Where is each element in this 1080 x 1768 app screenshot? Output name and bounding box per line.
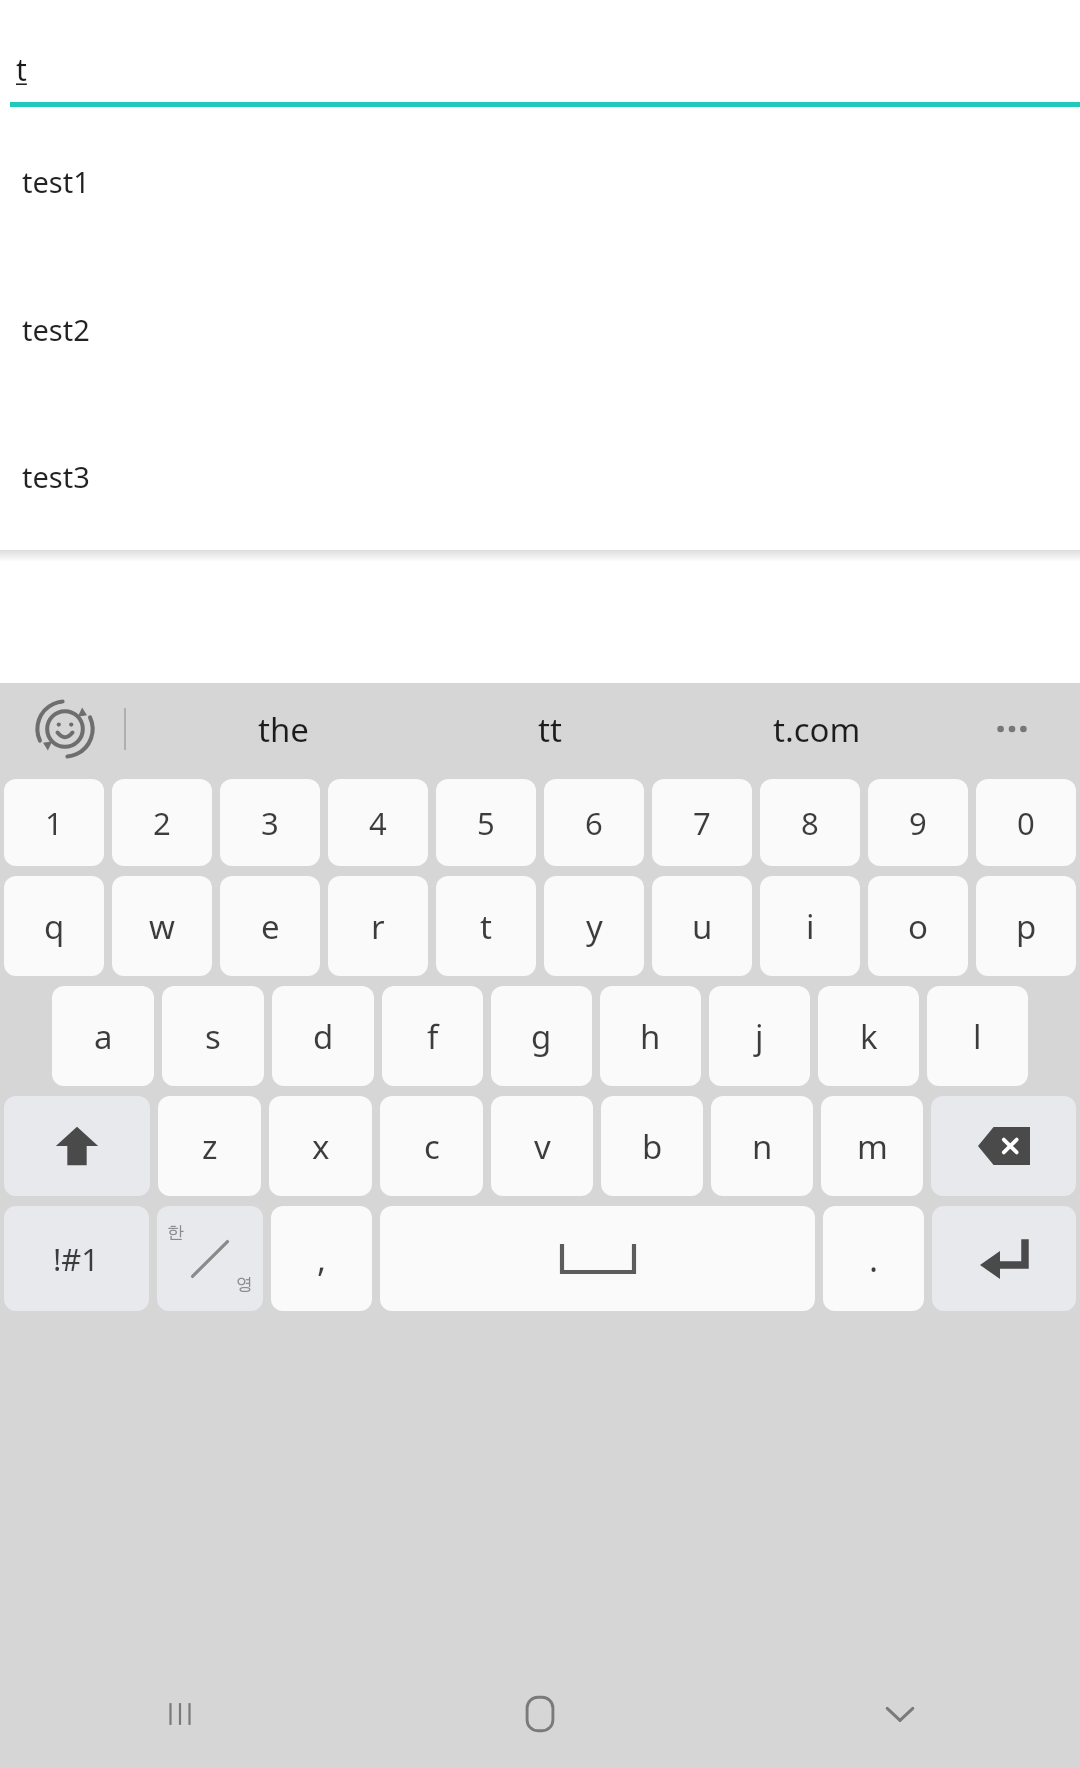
staticText: f — [427, 1014, 439, 1059]
button[interactable]: 4 — [328, 779, 428, 866]
staticText: e — [261, 904, 280, 949]
button[interactable]: . — [823, 1206, 924, 1311]
button[interactable]: 9 — [868, 779, 968, 866]
button[interactable]: test2 — [0, 255, 1080, 403]
staticText: c — [424, 1124, 440, 1169]
staticText: b — [642, 1124, 663, 1169]
staticText: the — [258, 707, 309, 752]
staticText: 1 — [45, 802, 63, 844]
button[interactable]: p — [976, 876, 1076, 976]
button[interactable]: Language — [157, 1206, 263, 1311]
staticText: m — [857, 1124, 888, 1169]
staticText: 3 — [261, 802, 279, 844]
button[interactable]: s — [162, 986, 264, 1086]
button[interactable]: j — [709, 986, 810, 1086]
staticText: t.com — [773, 707, 861, 752]
button[interactable]: t — [436, 876, 536, 976]
button[interactable]: Home — [360, 1660, 720, 1768]
button[interactable]: 7 — [652, 779, 752, 866]
button[interactable]: Emoji — [38, 702, 92, 756]
button[interactable]: Backspace — [931, 1096, 1076, 1196]
button[interactable]: More options — [982, 699, 1042, 759]
staticText: i — [806, 904, 815, 949]
button[interactable]: Space — [380, 1206, 815, 1311]
button[interactable]: 1 — [4, 779, 104, 866]
staticText: !#1 — [53, 1238, 100, 1280]
staticText: 0 — [1017, 802, 1035, 844]
button[interactable]: i — [760, 876, 860, 976]
button[interactable]: 2 — [112, 779, 212, 866]
button[interactable]: the — [150, 683, 416, 775]
staticText: n — [752, 1124, 773, 1169]
staticText: 6 — [585, 802, 603, 844]
staticText: tt — [538, 707, 562, 752]
button[interactable]: d — [272, 986, 374, 1086]
button[interactable]: 3 — [220, 779, 320, 866]
button[interactable]: b — [601, 1096, 703, 1196]
staticText: y — [586, 904, 603, 949]
button[interactable]: test1 — [0, 107, 1080, 255]
staticText: v — [534, 1124, 551, 1169]
staticText: p — [1016, 904, 1037, 949]
button[interactable]: Enter — [932, 1206, 1076, 1311]
button[interactable]: o — [868, 876, 968, 976]
button[interactable]: 5 — [436, 779, 536, 866]
button[interactable]: , — [271, 1206, 372, 1311]
staticText: o — [908, 904, 928, 949]
button[interactable]: e — [220, 876, 320, 976]
staticText: 9 — [909, 802, 927, 844]
button[interactable]: test3 — [0, 403, 1080, 550]
button[interactable]: x — [269, 1096, 372, 1196]
staticText: u — [692, 904, 713, 949]
button[interactable]: g — [491, 986, 592, 1086]
staticText: . — [869, 1236, 879, 1282]
staticText: t — [480, 904, 492, 949]
button[interactable]: q — [4, 876, 104, 976]
staticText: j — [755, 1014, 764, 1059]
button[interactable]: k — [818, 986, 919, 1086]
staticText: test1 — [22, 162, 90, 201]
button[interactable]: t.com — [683, 683, 950, 775]
button[interactable]: m — [821, 1096, 923, 1196]
button[interactable]: Recents — [0, 1660, 360, 1768]
staticText: g — [531, 1014, 552, 1059]
staticText: , — [317, 1236, 327, 1282]
staticText: r — [371, 904, 385, 949]
staticText: test2 — [22, 310, 90, 349]
button[interactable]: y — [544, 876, 644, 976]
button[interactable]: tt — [416, 683, 683, 775]
staticText: h — [640, 1014, 661, 1059]
button[interactable]: n — [711, 1096, 813, 1196]
button[interactable]: h — [600, 986, 701, 1086]
button[interactable]: z — [158, 1096, 261, 1196]
staticText: k — [860, 1014, 878, 1059]
staticText: w — [149, 904, 175, 949]
staticText: d — [313, 1014, 334, 1059]
staticText: s — [205, 1014, 221, 1059]
staticText: 7 — [693, 802, 711, 844]
button[interactable]: w — [112, 876, 212, 976]
button[interactable]: a — [52, 986, 154, 1086]
button[interactable]: f — [382, 986, 483, 1086]
staticText: 5 — [477, 802, 495, 844]
staticText: t — [16, 49, 27, 90]
button[interactable]: !#1 — [4, 1206, 149, 1311]
button[interactable]: Hide keyboard — [720, 1660, 1080, 1768]
staticText: x — [312, 1124, 330, 1169]
button[interactable]: 6 — [544, 779, 644, 866]
button[interactable]: c — [380, 1096, 483, 1196]
staticText: 2 — [153, 802, 171, 844]
button[interactable]: r — [328, 876, 428, 976]
button[interactable]: 0 — [976, 779, 1076, 866]
staticText: 한 — [167, 1222, 184, 1243]
staticText: 4 — [369, 802, 387, 844]
staticText: a — [94, 1014, 113, 1059]
button[interactable]: v — [491, 1096, 593, 1196]
staticText: z — [202, 1124, 218, 1169]
button[interactable]: 8 — [760, 779, 860, 866]
button[interactable]: u — [652, 876, 752, 976]
button[interactable]: Shift — [4, 1096, 150, 1196]
button[interactable]: l — [927, 986, 1028, 1086]
staticText: 영 — [236, 1274, 253, 1295]
staticText: q — [44, 904, 65, 949]
